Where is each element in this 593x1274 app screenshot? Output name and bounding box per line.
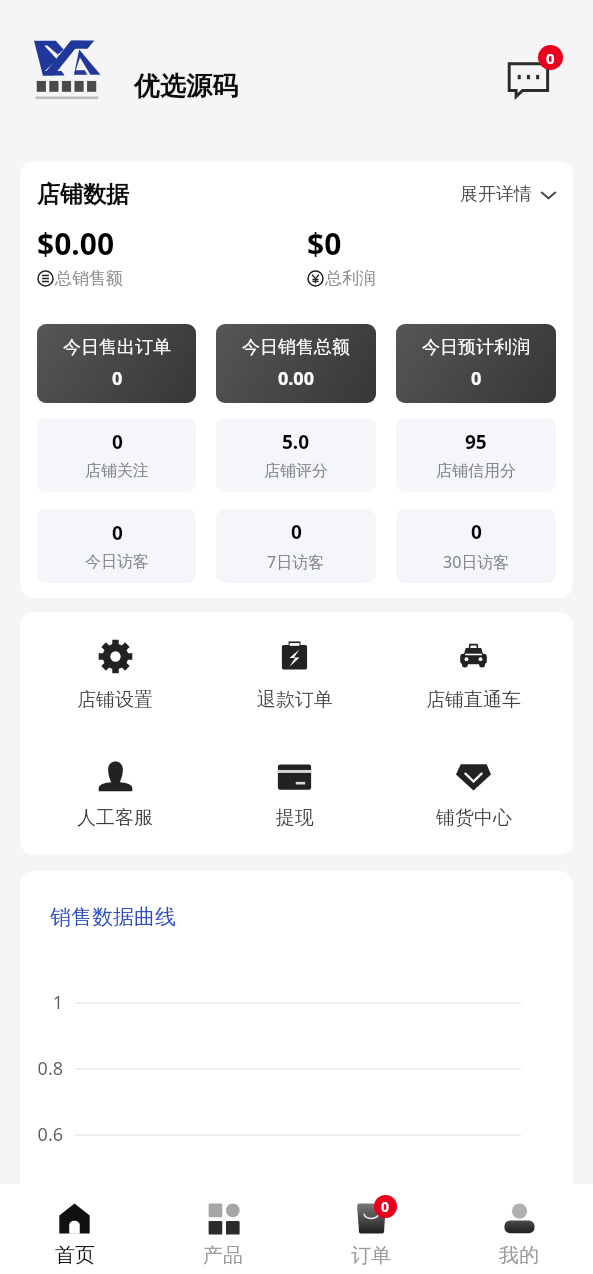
staticText: 0 [546, 48, 555, 68]
staticText: $0 [307, 223, 342, 264]
staticText: 店铺数据 [37, 180, 129, 209]
staticText: 今日访客 [85, 552, 149, 572]
staticText: 销售数据曲线 [50, 904, 176, 930]
staticText: 首页 [55, 1243, 95, 1268]
button[interactable]: 5.0 [216, 418, 376, 492]
button[interactable]: 展开详情 [460, 183, 557, 206]
staticText: 铺货中心 [436, 806, 512, 830]
staticText: 7日访客 [267, 551, 325, 573]
staticText: 订单 [351, 1243, 391, 1268]
button[interactable]: 退款订单 [205, 639, 384, 712]
staticText: 0 [112, 366, 123, 391]
button[interactable]: 产品 [149, 1184, 297, 1274]
button[interactable]: 今日预计利润 [396, 324, 556, 403]
staticText: 今日售出订单 [63, 336, 171, 359]
staticText: 0 [381, 1197, 390, 1216]
staticText: 人工客服 [77, 806, 153, 830]
staticText: 1 [20, 990, 63, 1015]
staticText: 总销售额 [55, 268, 123, 289]
staticText: 今日预计利润 [422, 336, 530, 359]
staticText: 30日访客 [443, 551, 510, 573]
staticText: $0.00 [37, 223, 115, 264]
staticText: 店铺评分 [264, 461, 328, 481]
button[interactable]: 今日售出订单 [37, 324, 196, 403]
button[interactable]: 0 [216, 509, 376, 583]
button[interactable]: 我的 [445, 1184, 593, 1274]
button[interactable]: 95 [396, 418, 556, 492]
staticText: 5.0 [282, 429, 310, 455]
staticText: 优选源码 [134, 70, 238, 103]
staticText: 0 [112, 520, 123, 546]
staticText: 店铺关注 [85, 461, 149, 481]
button[interactable]: 首页 [0, 1184, 149, 1274]
staticText: 0 [471, 519, 482, 545]
staticText: 95 [465, 429, 487, 455]
staticText: 产品 [203, 1243, 243, 1268]
staticText: 店铺设置 [77, 688, 153, 712]
staticText: 总利润 [325, 268, 376, 289]
button[interactable]: 店铺直通车 [384, 639, 563, 712]
staticText: 0.00 [278, 366, 314, 391]
button[interactable]: 提现 [205, 757, 384, 830]
button[interactable]: 铺货中心 [384, 757, 563, 830]
staticText: 0 [112, 429, 123, 455]
staticText: 店铺信用分 [436, 461, 516, 481]
staticText: 我的 [499, 1243, 539, 1268]
staticText: 0.8 [20, 1056, 63, 1081]
staticText: 今日销售总额 [242, 336, 350, 359]
staticText: 0 [291, 519, 302, 545]
staticText: 0 [471, 366, 482, 391]
button[interactable]: 人工客服 [25, 757, 205, 830]
button[interactable]: 店铺设置 [25, 639, 205, 712]
staticText: 提现 [276, 806, 314, 830]
button[interactable]: 0 [297, 1184, 445, 1274]
button[interactable]: 今日销售总额 [216, 324, 376, 403]
staticText: 0.6 [20, 1122, 63, 1147]
staticText: 店铺直通车 [426, 688, 521, 712]
staticText: 展开详情 [460, 183, 532, 206]
button[interactable]: 0 [37, 509, 196, 583]
button[interactable]: 0 [37, 418, 196, 492]
button[interactable]: Messages [503, 47, 565, 109]
staticText: 退款订单 [257, 688, 333, 712]
button[interactable]: 0 [396, 509, 556, 583]
